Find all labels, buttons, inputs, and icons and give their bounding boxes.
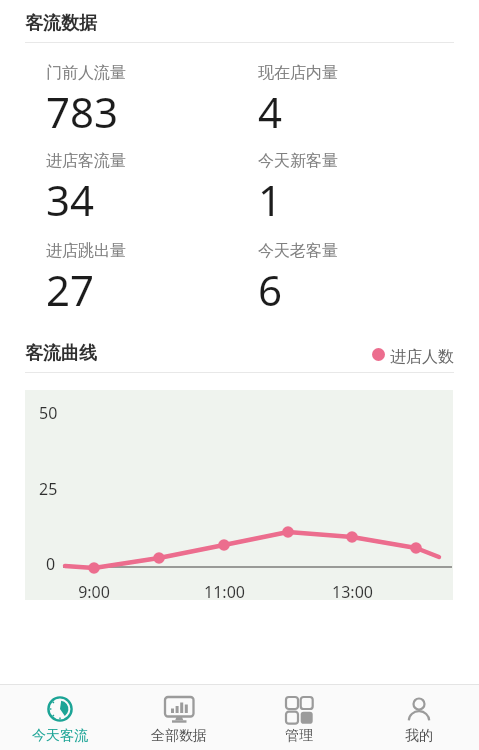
staticText: 27	[46, 261, 95, 318]
staticText: 11:00	[204, 581, 245, 603]
button[interactable]: 我的	[359, 684, 479, 750]
staticText: 客流数据	[25, 12, 97, 35]
staticText: 我的	[405, 727, 433, 745]
staticText: 783	[46, 83, 119, 140]
staticText: 进店客流量	[46, 151, 126, 171]
staticText: 门前人流量	[46, 63, 126, 83]
staticText: 9:00	[78, 581, 110, 603]
staticText: 25	[39, 478, 58, 500]
button[interactable]: 管理	[239, 684, 359, 750]
staticText: 1	[258, 171, 283, 228]
staticText: 4	[258, 83, 283, 140]
button[interactable]: 今天客流	[0, 684, 119, 750]
staticText: 现在店内量	[258, 63, 338, 83]
staticText: 34	[46, 171, 95, 228]
staticText: 管理	[285, 727, 313, 745]
staticText: 今天新客量	[258, 151, 338, 171]
staticText: 6	[258, 261, 283, 318]
staticText: 进店跳出量	[46, 241, 126, 261]
staticText: 今天客流	[32, 727, 88, 745]
staticText: 13:00	[332, 581, 373, 603]
staticText: 50	[39, 402, 58, 424]
staticText: 今天老客量	[258, 241, 338, 261]
staticText: 0	[46, 553, 56, 575]
staticText: 进店人数	[390, 347, 454, 367]
staticText: 全部数据	[151, 727, 207, 745]
staticText: 客流曲线	[25, 342, 97, 365]
button[interactable]: 全部数据	[119, 684, 239, 750]
